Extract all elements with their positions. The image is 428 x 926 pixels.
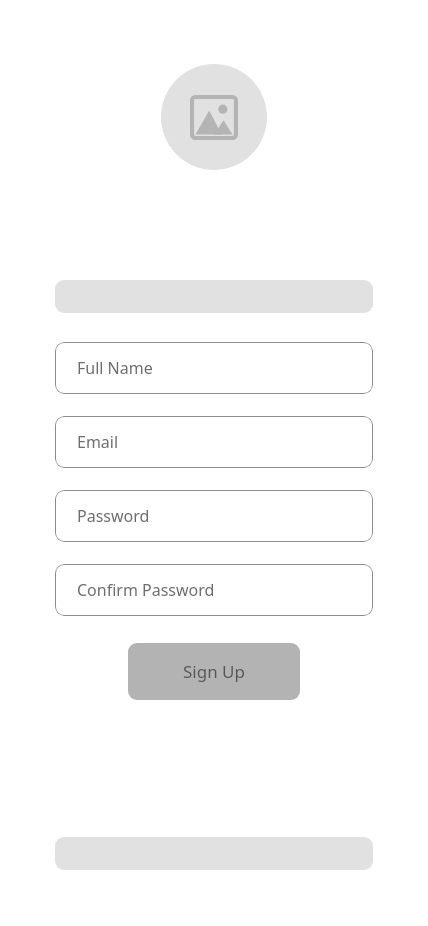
staticText: Confirm Password xyxy=(77,579,215,601)
staticText: Password xyxy=(77,505,150,527)
button[interactable]: Add profile photo xyxy=(161,64,267,170)
button[interactable]: Sign Up xyxy=(128,643,300,700)
staticText: Full Name xyxy=(77,357,153,379)
button[interactable]: Confirm Password xyxy=(55,564,373,616)
button[interactable]: Full Name xyxy=(55,342,373,394)
button[interactable]: Password xyxy=(55,490,373,542)
staticText: Email xyxy=(77,431,119,453)
button[interactable]: Email xyxy=(55,416,373,468)
staticText: Sign Up xyxy=(183,660,245,683)
